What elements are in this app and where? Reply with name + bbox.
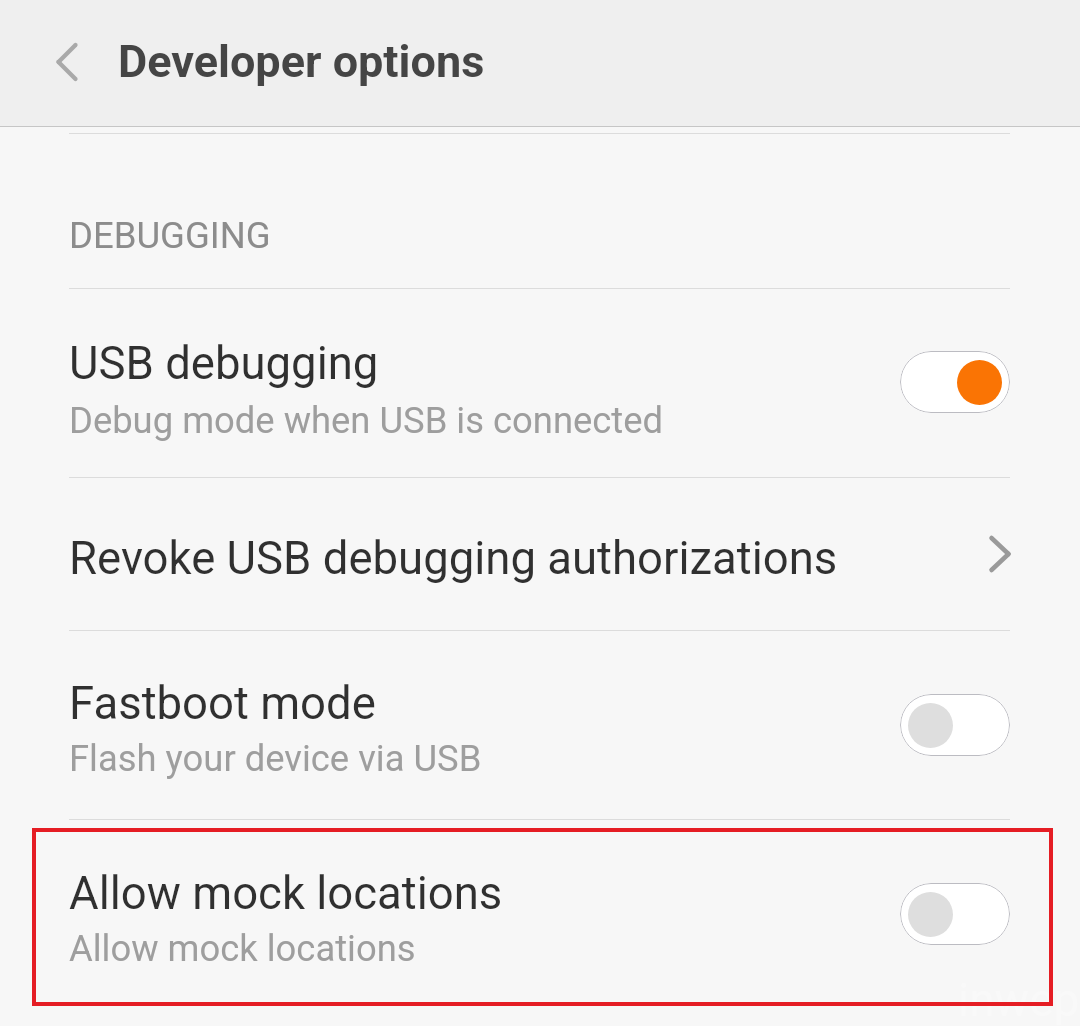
staticText: Revoke USB debugging authorizations — [69, 532, 838, 585]
button[interactable]: USB debugging — [0, 289, 1080, 477]
staticText: Allow mock locations — [69, 867, 503, 920]
staticText: USB debugging — [69, 337, 379, 390]
staticText: Debug mode when USB is connected — [69, 399, 664, 442]
staticText: Allow mock locations — [69, 927, 416, 970]
button[interactable]: Turn off — [900, 351, 1010, 413]
button[interactable]: Revoke USB debugging authorizations — [0, 478, 1080, 630]
staticText: inwepo — [958, 973, 1080, 1026]
button[interactable]: Turn on — [900, 694, 1010, 756]
staticText: Developer options — [118, 35, 485, 88]
button[interactable]: Allow mock locations — [0, 820, 1080, 1026]
staticText: Flash your device via USB — [69, 737, 482, 780]
staticText: Fastboot mode — [69, 677, 376, 730]
staticText: DEBUGGING — [69, 214, 271, 257]
other: Open — [970, 522, 1030, 586]
button[interactable]: Back — [35, 26, 99, 98]
button[interactable]: Turn on — [900, 883, 1010, 945]
button[interactable]: Fastboot mode — [0, 631, 1080, 819]
